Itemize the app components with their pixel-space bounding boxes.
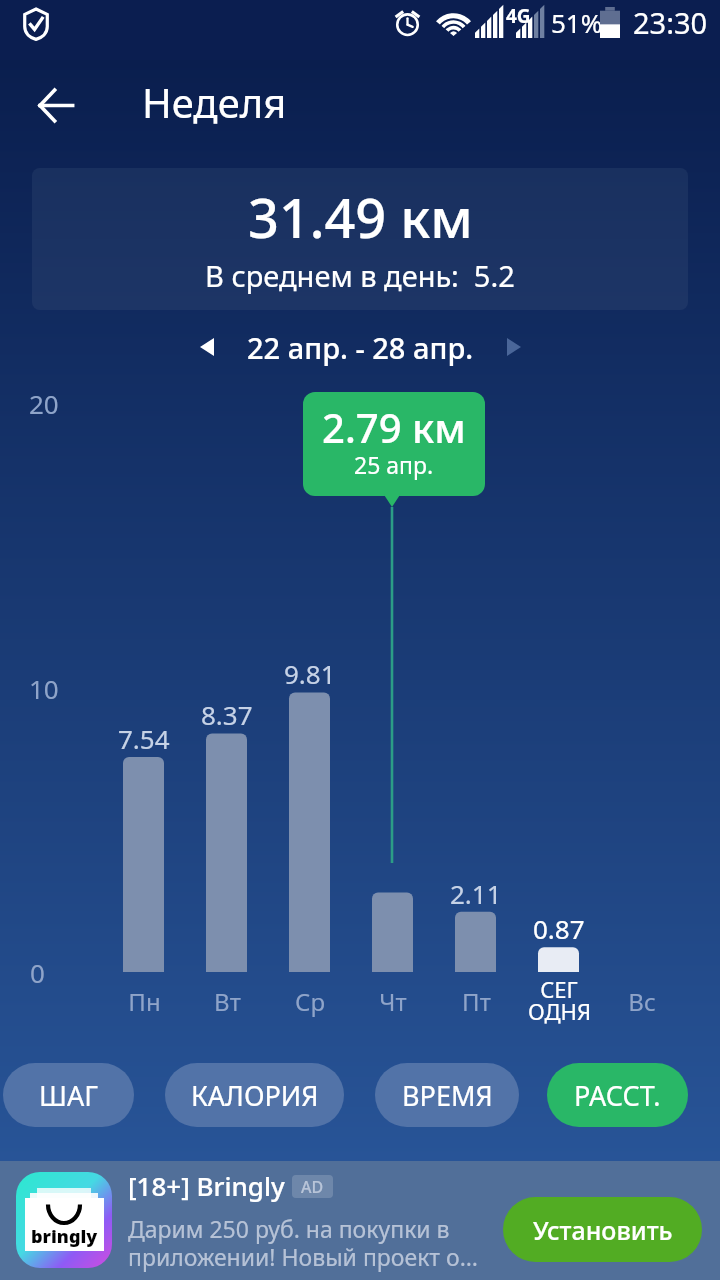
staticText: В среднем в день: 5.2 — [205, 256, 515, 295]
staticText: AD — [301, 1176, 324, 1198]
staticText: РАССТ. — [574, 1077, 661, 1114]
staticText: 9.81 — [284, 656, 336, 691]
button[interactable]: Next week — [492, 325, 536, 369]
staticText: 23:30 — [633, 3, 708, 42]
staticText: ОДНЯ — [528, 996, 591, 1026]
staticText: 25 апр. — [354, 449, 434, 480]
staticText: 10 — [29, 671, 59, 706]
staticText: Неделя — [142, 75, 287, 129]
staticText: 8.37 — [201, 697, 253, 732]
staticText: Ср — [295, 985, 325, 1018]
staticText: ВРЕМЯ — [402, 1077, 493, 1114]
staticText: Установить — [533, 1213, 673, 1247]
button[interactable]: 31.49 км — [32, 168, 688, 310]
staticText: СЕГ — [540, 974, 578, 1004]
staticText: 2.79 км — [322, 400, 466, 454]
button[interactable]: Back — [26, 75, 86, 135]
button[interactable]: РАССТ. — [547, 1063, 688, 1127]
staticText: приложении! Новый проект о… — [128, 1241, 478, 1272]
button[interactable]: Previous week — [185, 325, 229, 369]
staticText: 22 апр. - 28 апр. — [247, 328, 474, 367]
staticText: 51% — [551, 5, 603, 40]
staticText: ШАГ — [39, 1077, 98, 1114]
staticText: [18+] Bringly — [128, 1168, 285, 1203]
staticText: 7.54 — [118, 721, 170, 756]
staticText: 0 — [30, 955, 45, 990]
staticText: Дарим 250 руб. на покупки в — [128, 1213, 450, 1244]
staticText: Пт — [462, 985, 491, 1018]
staticText: 20 — [29, 386, 59, 421]
staticText: 31.49 км — [248, 180, 473, 254]
staticText: КАЛОРИЯ — [191, 1077, 319, 1114]
button[interactable]: ВРЕМЯ — [375, 1063, 519, 1127]
staticText: Вт — [214, 985, 241, 1018]
button[interactable]: КАЛОРИЯ — [165, 1063, 344, 1127]
button[interactable]: ШАГ — [3, 1063, 134, 1127]
staticText: bringly — [31, 1224, 98, 1249]
staticText: Пн — [128, 985, 161, 1018]
staticText: 2.11 — [450, 876, 502, 911]
staticText: Вс — [628, 985, 656, 1018]
staticText: 4G — [506, 3, 531, 29]
staticText: 0.87 — [533, 911, 585, 946]
staticText: Чт — [379, 985, 407, 1018]
button[interactable]: Установить — [503, 1197, 702, 1262]
